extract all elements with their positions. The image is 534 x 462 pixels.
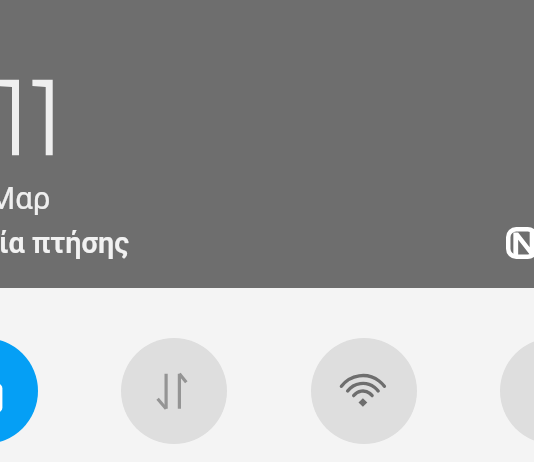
- staticText: ία πτήσης: [0, 226, 130, 260]
- button[interactable]: NFC: [506, 227, 534, 259]
- button[interactable]: Wi-Fi: [311, 338, 417, 444]
- staticText: Μαρ: [0, 180, 51, 217]
- button[interactable]: Airplane mode: [0, 338, 38, 444]
- button[interactable]: Mobile data: [121, 338, 227, 444]
- button[interactable]: Bluetooth: [500, 338, 534, 444]
